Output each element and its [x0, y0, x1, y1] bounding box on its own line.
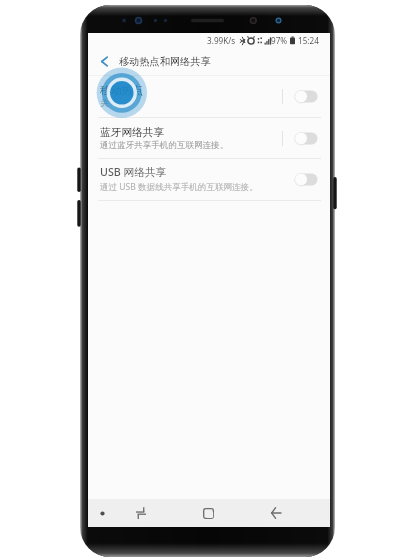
staticText: 97%	[271, 35, 288, 46]
staticText: 移动热点	[100, 84, 143, 97]
button[interactable]: 移动热点	[88, 75, 330, 117]
button[interactable]: Split screen	[122, 499, 160, 527]
button[interactable]: USB 网络共享	[88, 158, 330, 200]
button[interactable]: Toggle USB 网络共享	[283, 158, 330, 200]
staticText: 蓝牙网络共享	[100, 126, 165, 139]
button[interactable]: Menu	[83, 499, 121, 527]
button[interactable]: Recents	[189, 499, 227, 527]
staticText: 移动热点和网络共享	[119, 55, 211, 68]
other: Back	[96, 47, 113, 75]
staticText: 关	[100, 98, 109, 109]
staticText: 15:24	[298, 35, 319, 46]
staticText: 通过蓝牙共享手机的互联网连接。	[100, 140, 229, 151]
staticText: 3.99K/s	[207, 35, 236, 46]
button[interactable]: 蓝牙网络共享	[88, 117, 330, 159]
staticText: 通过 USB 数据线共享手机的互联网连接。	[100, 181, 258, 193]
staticText: USB 网络共享	[100, 165, 167, 180]
button[interactable]: Toggle 蓝牙网络共享	[283, 117, 330, 159]
button[interactable]: Back	[257, 499, 295, 527]
button[interactable]: Toggle 移动热点	[283, 75, 330, 117]
button[interactable]: Back	[88, 47, 330, 75]
